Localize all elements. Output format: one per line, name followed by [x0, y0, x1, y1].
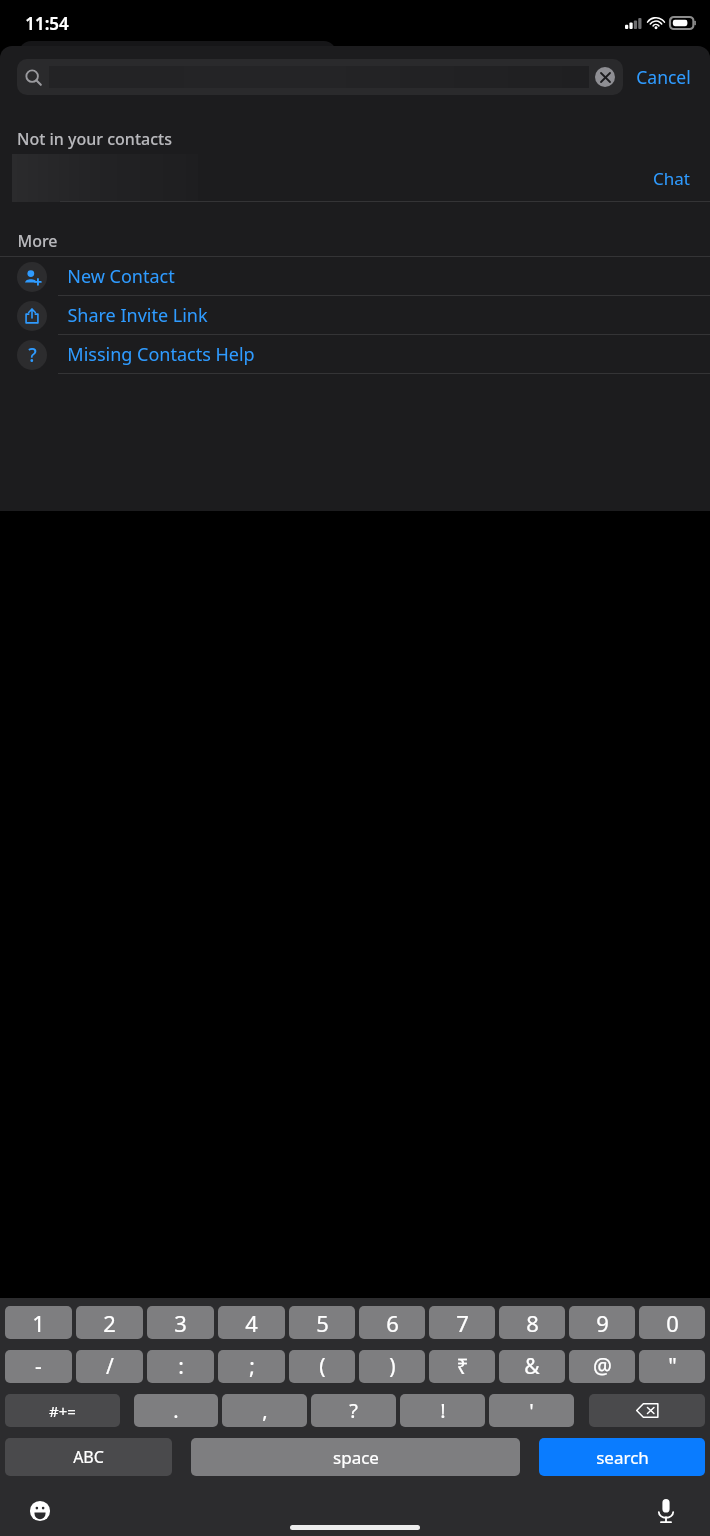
- button[interactable]: ABC: [5, 1438, 172, 1476]
- staticText: Chat: [653, 167, 690, 190]
- button[interactable]: ?: [0, 335, 710, 374]
- staticText: ": [668, 1352, 677, 1381]
- staticText: Share Invite Link: [67, 303, 208, 328]
- staticText: &: [524, 1352, 540, 1381]
- button[interactable]: Backspace: [589, 1394, 705, 1427]
- staticText: 0: [666, 1308, 679, 1338]
- button[interactable]: #+=: [5, 1394, 120, 1427]
- staticText: ₹: [456, 1352, 469, 1381]
- button[interactable]: @: [569, 1350, 635, 1383]
- button[interactable]: 9: [569, 1306, 635, 1339]
- button[interactable]: :: [147, 1350, 214, 1383]
- button[interactable]: 1: [5, 1306, 72, 1339]
- button[interactable]: ₹: [429, 1350, 495, 1383]
- button[interactable]: 0: [639, 1306, 705, 1339]
- staticText: /: [106, 1352, 114, 1381]
- staticText: ABC: [73, 1446, 104, 1468]
- button[interactable]: New Contact: [0, 257, 710, 296]
- button[interactable]: search: [539, 1438, 705, 1476]
- button[interactable]: ': [489, 1394, 574, 1427]
- button[interactable]: Share Invite Link: [0, 296, 710, 335]
- staticText: .: [173, 1397, 179, 1424]
- button[interactable]: 2: [76, 1306, 143, 1339]
- button[interactable]: Cancel: [623, 59, 693, 95]
- staticText: !: [440, 1397, 446, 1424]
- button[interactable]: Clear search: [17, 59, 623, 95]
- staticText: #+=: [49, 1401, 76, 1421]
- staticText: search: [596, 1446, 649, 1469]
- staticText: 2: [103, 1308, 116, 1338]
- button[interactable]: !: [400, 1394, 485, 1427]
- staticText: Missing Contacts Help: [67, 342, 255, 367]
- button[interactable]: Dictation: [648, 1493, 684, 1529]
- staticText: ,: [262, 1397, 268, 1424]
- button[interactable]: 8: [499, 1306, 565, 1339]
- staticText: 9: [596, 1308, 609, 1338]
- button[interactable]: Chat: [0, 154, 710, 202]
- staticText: @: [593, 1352, 612, 1381]
- button[interactable]: 6: [359, 1306, 425, 1339]
- staticText: 3: [174, 1308, 187, 1338]
- button[interactable]: ): [359, 1350, 425, 1383]
- staticText: :: [178, 1352, 184, 1381]
- staticText: ): [389, 1352, 396, 1381]
- staticText: Not in your contacts: [17, 128, 172, 150]
- staticText: ': [529, 1397, 534, 1424]
- button[interactable]: Emoji keyboard: [22, 1493, 58, 1529]
- staticText: 6: [386, 1308, 399, 1338]
- button[interactable]: &: [499, 1350, 565, 1383]
- button[interactable]: 4: [218, 1306, 285, 1339]
- button[interactable]: ,: [222, 1394, 307, 1427]
- button[interactable]: space: [191, 1438, 520, 1476]
- staticText: ;: [249, 1352, 255, 1381]
- staticText: space: [333, 1446, 379, 1469]
- staticText: 1: [32, 1308, 45, 1338]
- button[interactable]: /: [76, 1350, 143, 1383]
- button[interactable]: 3: [147, 1306, 214, 1339]
- staticText: Cancel: [636, 65, 691, 89]
- button[interactable]: .: [134, 1394, 218, 1427]
- staticText: 5: [316, 1308, 329, 1338]
- button[interactable]: 5: [289, 1306, 355, 1339]
- staticText: 11:54: [25, 12, 69, 35]
- staticText: 8: [526, 1308, 539, 1338]
- button[interactable]: ": [639, 1350, 705, 1383]
- staticText: -: [35, 1352, 42, 1381]
- staticText: 4: [245, 1308, 258, 1338]
- staticText: More: [17, 230, 58, 252]
- staticText: (: [319, 1352, 326, 1381]
- staticText: ?: [28, 342, 37, 368]
- button[interactable]: ?: [311, 1394, 396, 1427]
- staticText: ?: [349, 1397, 358, 1424]
- staticText: 7: [456, 1308, 469, 1338]
- button[interactable]: -: [5, 1350, 72, 1383]
- staticText: New Contact: [67, 264, 175, 289]
- button[interactable]: (: [289, 1350, 355, 1383]
- button[interactable]: ;: [218, 1350, 285, 1383]
- button[interactable]: Clear search: [595, 67, 615, 87]
- button[interactable]: 7: [429, 1306, 495, 1339]
